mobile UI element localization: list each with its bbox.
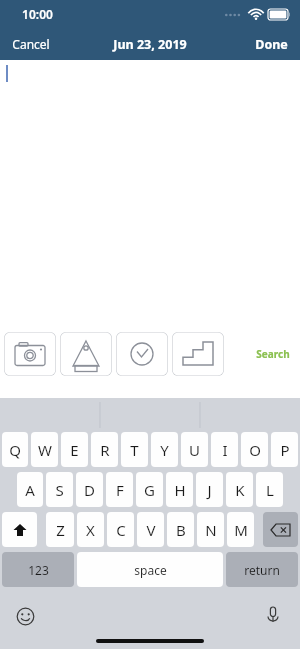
button[interactable]: Y bbox=[151, 432, 178, 467]
staticText: E bbox=[70, 440, 79, 460]
button[interactable]: X bbox=[77, 512, 104, 547]
button[interactable]: E bbox=[61, 432, 88, 467]
staticText: return bbox=[244, 562, 280, 578]
staticText: U bbox=[189, 440, 200, 460]
button[interactable]: Delete bbox=[263, 512, 298, 547]
button[interactable]: O bbox=[241, 432, 268, 467]
staticText: Cancel bbox=[12, 36, 50, 52]
button[interactable]: J bbox=[196, 472, 223, 507]
staticText: Done bbox=[255, 36, 288, 53]
button[interactable]: Stairs bbox=[172, 332, 224, 376]
staticText: Z bbox=[56, 520, 65, 540]
staticText: H bbox=[174, 480, 186, 500]
staticText: O bbox=[249, 440, 261, 460]
button[interactable]: L bbox=[256, 472, 283, 507]
staticText: Search bbox=[256, 347, 290, 361]
button[interactable]: R bbox=[91, 432, 118, 467]
staticText: R bbox=[100, 440, 110, 460]
staticText: P bbox=[280, 440, 290, 460]
button[interactable]: Shift bbox=[2, 512, 37, 547]
button[interactable]: P bbox=[271, 432, 298, 467]
button[interactable]: N bbox=[197, 512, 224, 547]
button[interactable]: H bbox=[166, 472, 193, 507]
staticText: M bbox=[234, 520, 248, 540]
button[interactable]: V bbox=[137, 512, 164, 547]
staticText: B bbox=[176, 520, 186, 540]
button[interactable]: D bbox=[76, 472, 103, 507]
staticText: space bbox=[134, 562, 167, 578]
button[interactable]: Camera bbox=[4, 332, 56, 376]
staticText: F bbox=[116, 480, 124, 500]
button[interactable]: C bbox=[107, 512, 134, 547]
button[interactable]: F bbox=[106, 472, 133, 507]
button[interactable]: B bbox=[167, 512, 194, 547]
staticText: 123 bbox=[28, 562, 49, 578]
button[interactable]: W bbox=[31, 432, 58, 467]
button[interactable]: Emoji bbox=[12, 603, 38, 629]
button[interactable]: Time bbox=[116, 332, 168, 376]
button[interactable]: T bbox=[121, 432, 148, 467]
button[interactable]: Done bbox=[243, 30, 300, 59]
button[interactable]: Q bbox=[2, 432, 28, 467]
staticText: L bbox=[266, 480, 274, 500]
button[interactable]: Dictate bbox=[260, 603, 286, 629]
button[interactable]: K bbox=[226, 472, 253, 507]
staticText: V bbox=[146, 520, 156, 540]
staticText: X bbox=[86, 520, 95, 540]
button[interactable]: U bbox=[181, 432, 208, 467]
staticText: Y bbox=[160, 440, 169, 460]
staticText: J bbox=[207, 480, 212, 500]
staticText: N bbox=[205, 520, 217, 540]
button[interactable]: S bbox=[46, 472, 73, 507]
staticText: 10:00 bbox=[22, 6, 53, 22]
button[interactable]: Z bbox=[46, 512, 74, 547]
button[interactable]: space bbox=[77, 552, 223, 587]
staticText: D bbox=[84, 480, 95, 500]
staticText: S bbox=[55, 480, 64, 500]
staticText: W bbox=[38, 440, 52, 460]
staticText: A bbox=[25, 480, 35, 500]
button[interactable]: Cancel bbox=[0, 30, 62, 58]
button[interactable]: Search bbox=[246, 339, 300, 369]
staticText: G bbox=[144, 480, 155, 500]
staticText: Jun 23, 2019 bbox=[113, 36, 187, 53]
button[interactable]: A bbox=[17, 472, 43, 507]
staticText: C bbox=[116, 520, 126, 540]
button[interactable]: Home bbox=[60, 332, 112, 376]
staticText: Q bbox=[9, 440, 21, 460]
button[interactable]: return bbox=[226, 552, 298, 587]
staticText: T bbox=[130, 440, 139, 460]
staticText: K bbox=[235, 480, 245, 500]
staticText: I bbox=[222, 440, 228, 460]
button[interactable]: 123 bbox=[2, 552, 74, 587]
button[interactable]: M bbox=[227, 512, 254, 547]
button[interactable]: G bbox=[136, 472, 163, 507]
button[interactable]: I bbox=[211, 432, 238, 467]
